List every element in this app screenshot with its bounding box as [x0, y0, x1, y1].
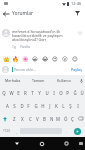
staticText: H: [41, 103, 45, 109]
button[interactable]: Q: [0, 86, 8, 99]
staticText: Ş: [69, 103, 72, 109]
staticText: L: [62, 103, 65, 109]
button[interactable]: Send: [70, 125, 85, 137]
button[interactable]: Merhaba: [0, 75, 25, 86]
staticText: P: [66, 90, 69, 96]
button[interactable]: J: [46, 99, 53, 112]
staticText: Yorum ekle...: [14, 67, 70, 72]
staticText: 🌸: [22, 56, 29, 62]
button[interactable]: Home: [35, 137, 49, 150]
button[interactable]: P: [64, 86, 71, 99]
button[interactable]: 🌸: [20, 54, 30, 64]
staticText: O: [59, 90, 63, 96]
staticText: F: [27, 103, 30, 109]
button[interactable]: Z: [10, 112, 18, 125]
button[interactable]: Recents: [59, 137, 73, 150]
staticText: 12:46: [71, 1, 82, 6]
button[interactable]: Shift: [0, 112, 10, 125]
button[interactable]: G: [32, 99, 39, 112]
button[interactable]: 😮: [60, 54, 70, 64]
button[interactable]: C: [26, 112, 34, 125]
button[interactable]: 😍: [50, 54, 60, 64]
button[interactable]: N: [48, 112, 55, 125]
staticText: R: [24, 90, 27, 96]
staticText: Ö: [64, 116, 68, 122]
button[interactable]: Kullanıcı: [51, 75, 77, 86]
button[interactable]: A: [4, 99, 11, 112]
button[interactable]: Y: [36, 86, 43, 99]
staticText: E: [17, 90, 20, 96]
button[interactable]: L: [60, 99, 67, 112]
button[interactable]: S: [11, 99, 18, 112]
staticText: mehmet.d Sonuşahood'ın ilk karanlıkta et…: [12, 29, 75, 43]
staticText: S: [13, 103, 16, 109]
staticText: 👑: [3, 56, 10, 62]
staticText: Yorumlar: [12, 10, 34, 17]
staticText: Ü: [80, 90, 84, 96]
staticText: Y: [38, 90, 41, 96]
button[interactable]: R: [22, 86, 29, 99]
staticText: A: [6, 103, 9, 109]
button[interactable]: D: [18, 99, 25, 112]
button[interactable]: B: [41, 112, 48, 125]
staticText: 😂: [42, 56, 49, 62]
button[interactable]: V: [34, 112, 41, 125]
staticText: ?123: [3, 129, 10, 133]
staticText: 😍: [52, 56, 58, 62]
button[interactable]: Hide keyboard: [10, 137, 24, 150]
staticText: M: [56, 116, 61, 122]
staticText: Ç: [71, 116, 74, 122]
button[interactable]: U: [43, 86, 50, 99]
button[interactable]: I: [74, 99, 81, 112]
button[interactable]: Ş: [67, 99, 74, 112]
button[interactable]: 😀: [30, 54, 40, 64]
button[interactable]: I: [50, 86, 57, 99]
staticText: Tamam: [32, 78, 45, 83]
button[interactable]: Ü: [78, 86, 85, 99]
button[interactable]: Tamam: [25, 75, 51, 86]
staticText: J: [49, 103, 51, 109]
button[interactable]: Like: [76, 29, 83, 36]
button[interactable]: O: [57, 86, 64, 99]
button[interactable]: Filter: [72, 7, 83, 20]
button[interactable]: ?123: [0, 125, 13, 137]
button[interactable]: Switch keyboard: [77, 137, 85, 150]
staticText: Kullanıcı: [57, 78, 72, 83]
staticText: 🔥: [12, 56, 19, 62]
staticText: N: [50, 116, 54, 122]
button[interactable]: Ç: [69, 112, 76, 125]
button[interactable]: E: [15, 86, 22, 99]
staticText: Z: [13, 116, 16, 122]
staticText: D: [20, 103, 24, 109]
staticText: Ğ: [73, 90, 77, 96]
button[interactable]: T: [29, 86, 36, 99]
button[interactable]: Back: [0, 7, 11, 20]
button[interactable]: Backspace: [76, 112, 85, 125]
staticText: I: [53, 90, 55, 96]
button[interactable]: H: [39, 99, 46, 112]
staticText: 😮: [62, 56, 68, 62]
staticText: 1g: [12, 45, 16, 49]
staticText: T: [31, 90, 34, 96]
button[interactable]: 🔥: [10, 54, 20, 64]
button[interactable]: X: [18, 112, 26, 125]
button[interactable]: K: [53, 99, 60, 112]
button[interactable]: 😂: [40, 54, 50, 64]
staticText: Merhaba: [5, 78, 21, 83]
button[interactable]: Paylaş: [70, 65, 83, 74]
button[interactable]: W: [8, 86, 15, 99]
button[interactable]: Voice input: [77, 75, 85, 86]
button[interactable]: 😊: [70, 54, 80, 64]
button[interactable]: M: [55, 112, 62, 125]
button[interactable]: 👑: [1, 54, 11, 64]
button[interactable]: Comma: [13, 125, 20, 137]
staticText: 😀: [32, 56, 38, 62]
button[interactable]: Ğ: [71, 86, 78, 99]
staticText: .: [66, 129, 67, 134]
button[interactable]: F: [25, 99, 32, 112]
staticText: Paylaş: [71, 67, 82, 72]
button[interactable]: Ö: [62, 112, 69, 125]
staticText: U: [45, 90, 49, 96]
